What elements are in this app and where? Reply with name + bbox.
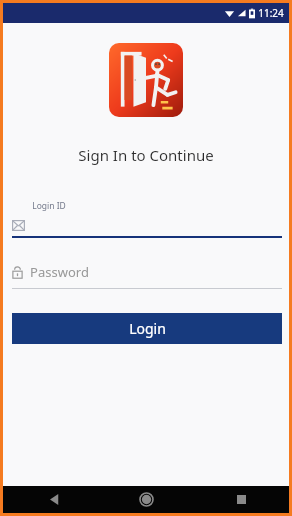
button[interactable]: Login ID <box>12 200 282 238</box>
other: Email <box>12 220 25 231</box>
button[interactable]: Recents <box>194 486 289 513</box>
staticText: Login <box>129 319 166 338</box>
button[interactable]: Login <box>12 313 282 344</box>
staticText: 11:24 <box>258 6 284 20</box>
other: App logo <box>109 43 183 117</box>
button[interactable]: Home <box>99 486 194 513</box>
button[interactable]: Password <box>12 263 282 289</box>
staticText: Login ID <box>32 200 66 212</box>
other: Password <box>12 266 23 279</box>
staticText: Password <box>30 263 89 281</box>
staticText: Sign In to Continue <box>78 145 214 165</box>
button[interactable]: Back <box>3 486 99 513</box>
